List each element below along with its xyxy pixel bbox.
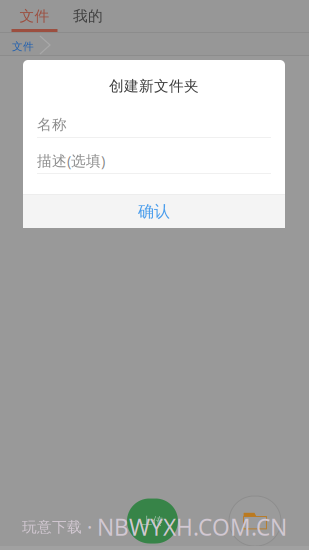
staticText: NBWYXH.COM.CN (97, 512, 287, 542)
staticText: · (82, 514, 97, 540)
staticText: 描述(选填) (37, 151, 105, 170)
button[interactable]: 我的 (69, 0, 107, 32)
staticText: 创建新文件夹 (109, 77, 199, 95)
staticText: 名称 (37, 115, 67, 133)
button[interactable]: 文件 (0, 0, 69, 32)
button[interactable]: 文件 (0, 33, 38, 55)
staticText: 确认 (138, 202, 170, 221)
staticText: 玩意下载 (22, 518, 82, 536)
staticText: 文件 (19, 7, 49, 25)
staticText: 上传 (141, 514, 163, 527)
staticText: 我的 (73, 7, 103, 25)
button[interactable]: New folder (229, 496, 281, 546)
button[interactable]: 上传 (127, 498, 178, 543)
staticText: 文件 (12, 40, 34, 53)
button[interactable]: 确认 (23, 195, 285, 228)
